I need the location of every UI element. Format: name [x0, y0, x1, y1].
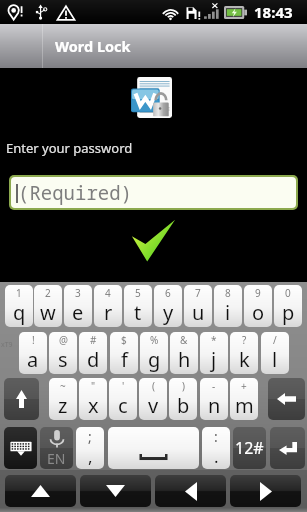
button[interactable]: %	[140, 332, 168, 374]
button[interactable]: ;	[76, 427, 104, 469]
staticText: ;	[88, 427, 92, 446]
button[interactable]: 1	[5, 285, 33, 327]
button[interactable]: Right	[230, 475, 301, 507]
staticText: "	[91, 379, 96, 393]
staticText: *	[211, 333, 217, 347]
staticText: (Required)	[18, 180, 133, 206]
button[interactable]: Up	[5, 475, 76, 507]
staticText: o	[252, 299, 265, 326]
staticText: @	[59, 333, 68, 347]
staticText: :	[214, 427, 218, 446]
button[interactable]: 0	[274, 285, 302, 327]
button[interactable]: 12#	[233, 427, 266, 469]
staticText: ~	[60, 379, 66, 393]
button[interactable]: ~	[49, 378, 77, 420]
staticText: n	[208, 392, 221, 419]
staticText: 6	[165, 286, 171, 300]
staticText: z	[58, 392, 68, 419]
staticText: x	[88, 392, 99, 419]
staticText: 9	[255, 286, 261, 300]
button[interactable]: 2	[34, 285, 62, 327]
staticText: 8	[225, 286, 231, 300]
button[interactable]: Space	[108, 427, 199, 469]
button[interactable]: 8	[214, 285, 242, 327]
button[interactable]: "	[79, 378, 107, 420]
staticText: .	[214, 445, 219, 468]
staticText: !	[32, 333, 35, 347]
staticText: ?	[242, 333, 247, 347]
button[interactable]: Enter	[270, 427, 305, 469]
button[interactable]: 7	[184, 285, 212, 327]
button[interactable]: :	[202, 427, 230, 469]
staticText: r	[104, 299, 113, 326]
staticText: j	[211, 346, 217, 373]
staticText: s	[58, 346, 68, 373]
staticText: q	[13, 299, 26, 326]
staticText: 5	[135, 286, 141, 300]
staticText: (	[152, 379, 155, 393]
staticText: &	[180, 333, 188, 347]
staticText: a	[27, 346, 39, 373]
button[interactable]: Down	[80, 475, 151, 507]
staticText: y	[163, 299, 174, 326]
button[interactable]: +	[230, 378, 258, 420]
button[interactable]: @	[49, 332, 77, 374]
staticText: b	[177, 392, 190, 419]
staticText: k	[239, 346, 250, 373]
staticText: %	[150, 333, 159, 347]
staticText: p	[282, 299, 295, 326]
staticText: +	[241, 379, 247, 393]
button[interactable]: Hide keyboard	[4, 427, 37, 469]
staticText: i	[225, 299, 231, 326]
staticText: g	[148, 346, 161, 373]
button[interactable]: (	[139, 378, 167, 420]
staticText: xT9	[1, 340, 13, 350]
staticText: 7	[195, 286, 201, 300]
button[interactable]: 5	[124, 285, 152, 327]
staticText: EN	[47, 449, 66, 468]
staticText: $	[121, 333, 127, 347]
staticText: )	[182, 379, 185, 393]
button[interactable]: '	[109, 378, 137, 420]
staticText: 4	[105, 286, 111, 300]
staticText: d	[87, 346, 100, 373]
staticText: #	[90, 333, 97, 347]
button[interactable]: Left	[155, 475, 226, 507]
staticText: f	[121, 346, 128, 373]
button[interactable]: 6	[154, 285, 182, 327]
button[interactable]: 3	[64, 285, 92, 327]
button[interactable]: 9	[244, 285, 272, 327]
staticText: w	[40, 299, 56, 326]
staticText: t	[134, 299, 142, 326]
staticText: c	[118, 392, 128, 419]
staticText: m	[235, 392, 254, 419]
button[interactable]: -	[200, 378, 228, 420]
staticText: v	[148, 392, 159, 419]
button[interactable]: )	[169, 378, 197, 420]
button[interactable]: Backspace	[268, 378, 305, 420]
button[interactable]: (Required)	[11, 177, 296, 208]
button[interactable]: #	[79, 332, 107, 374]
staticText: 0	[285, 286, 291, 300]
staticText: e	[72, 299, 84, 326]
button[interactable]: $	[110, 332, 138, 374]
staticText: 1	[16, 286, 22, 300]
button[interactable]: ?	[230, 332, 258, 374]
staticText: /	[273, 333, 277, 347]
staticText: 2	[45, 286, 51, 300]
button[interactable]: /	[261, 332, 289, 374]
staticText: Enter your password	[6, 139, 133, 157]
button[interactable]: Voice input	[40, 427, 73, 469]
staticText: u	[192, 299, 205, 326]
staticText: 3	[75, 286, 81, 300]
button[interactable]: 4	[94, 285, 122, 327]
button[interactable]: !	[19, 332, 47, 374]
staticText: Word Lock	[55, 36, 131, 56]
button[interactable]: Shift	[4, 378, 39, 420]
button[interactable]: *	[200, 332, 228, 374]
staticText: '	[122, 379, 125, 393]
button[interactable]: &	[170, 332, 198, 374]
staticText: ,	[88, 445, 93, 468]
staticText: 18:43	[254, 2, 293, 22]
staticText: -	[212, 379, 216, 393]
